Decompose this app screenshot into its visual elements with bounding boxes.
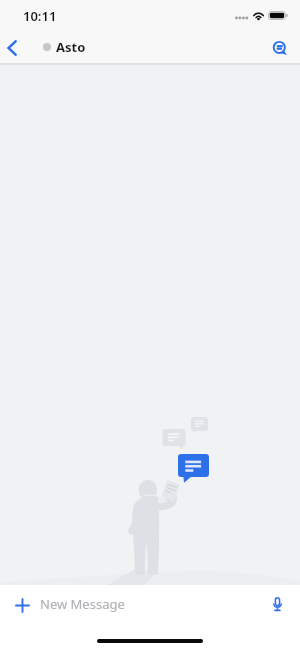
button[interactable]: Back xyxy=(0,31,24,65)
staticText: 10:11 xyxy=(23,7,57,25)
button[interactable]: New conversation xyxy=(263,31,297,65)
staticText: New Message xyxy=(40,595,256,613)
button[interactable]: Voice message xyxy=(260,585,295,625)
staticText: Asto xyxy=(56,38,86,56)
button[interactable]: Add attachment xyxy=(0,585,44,625)
